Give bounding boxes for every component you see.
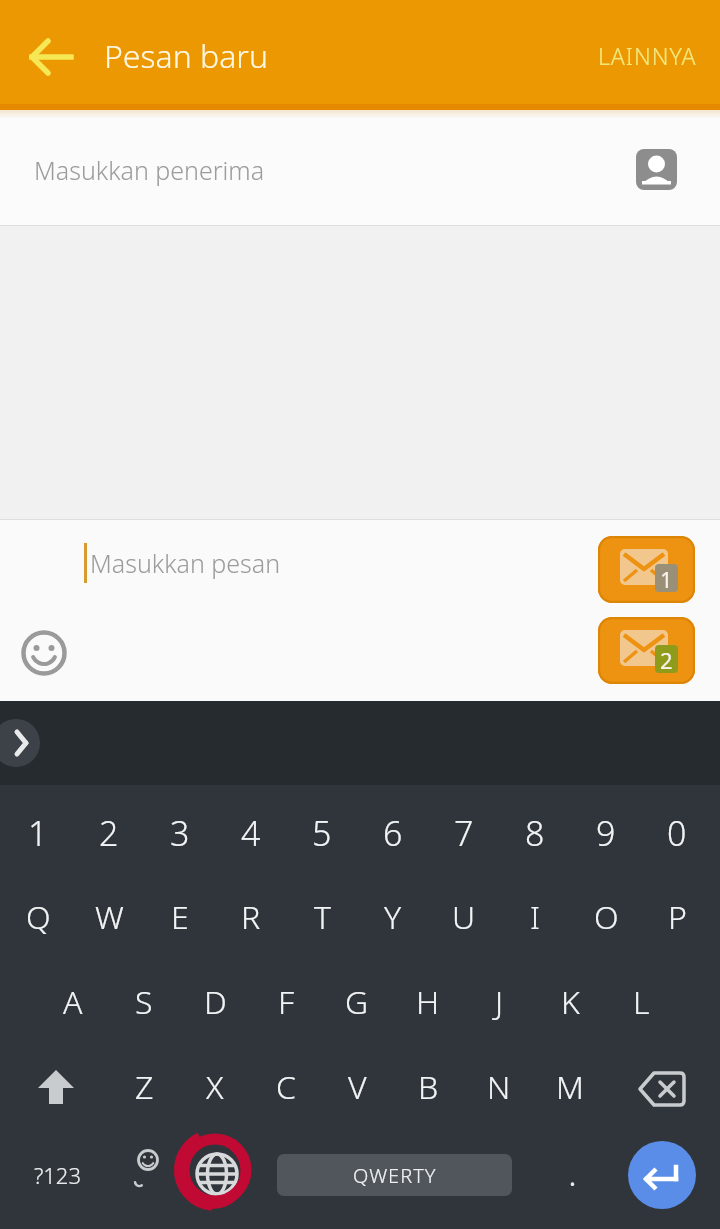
staticText: H <box>416 980 440 1024</box>
button[interactable] <box>636 149 677 190</box>
button[interactable]: R <box>216 879 286 955</box>
staticText: QWERTY <box>353 1162 437 1189</box>
staticText: O <box>594 895 619 939</box>
button[interactable]: N <box>464 1049 534 1125</box>
button[interactable]: P <box>642 879 712 955</box>
staticText: B <box>418 1065 439 1109</box>
button[interactable] <box>24 34 78 80</box>
staticText: 3 <box>170 810 190 856</box>
button[interactable]: J <box>464 964 534 1040</box>
staticText: P <box>668 895 687 939</box>
button[interactable]: Masukkan penerima <box>34 130 594 210</box>
button[interactable]: 7 <box>429 795 499 871</box>
button[interactable]: O <box>571 879 641 955</box>
staticText: . <box>569 1158 576 1193</box>
staticText: Q <box>26 895 51 939</box>
button[interactable] <box>634 1068 690 1110</box>
button[interactable]: D <box>180 964 250 1040</box>
staticText: Masukkan pesan <box>90 546 281 580</box>
button[interactable]: Masukkan pesan <box>90 530 570 596</box>
staticText: A <box>63 980 83 1024</box>
staticText: V <box>348 1065 367 1109</box>
staticText: 7 <box>454 810 474 856</box>
staticText: 5 <box>312 810 332 856</box>
button[interactable]: 8 <box>500 795 570 871</box>
staticText: C <box>276 1065 296 1109</box>
button[interactable]: S <box>109 964 179 1040</box>
staticText: N <box>487 1065 511 1109</box>
staticText: 1 <box>28 810 48 856</box>
staticText: K <box>561 980 580 1024</box>
button[interactable]: H <box>393 964 463 1040</box>
staticText: 6 <box>383 810 403 856</box>
button[interactable]: 9 <box>571 795 641 871</box>
button[interactable]: L <box>606 964 676 1040</box>
button[interactable] <box>30 1065 82 1111</box>
staticText: X <box>206 1065 224 1109</box>
staticText: Masukkan penerima <box>34 153 265 187</box>
button[interactable]: ?123 <box>25 1152 89 1198</box>
button[interactable] <box>20 629 68 677</box>
staticText: J <box>495 980 504 1024</box>
staticText: E <box>171 895 189 939</box>
button[interactable]: U <box>429 879 499 955</box>
staticText: T <box>314 895 331 939</box>
button[interactable]: F <box>251 964 321 1040</box>
button[interactable]: K <box>535 964 605 1040</box>
button[interactable]: T <box>287 879 357 955</box>
button[interactable] <box>628 1141 696 1209</box>
button[interactable]: G <box>322 964 392 1040</box>
button[interactable]: Y <box>358 879 428 955</box>
button[interactable]: 0 <box>642 795 712 871</box>
staticText: Y <box>384 895 402 939</box>
staticText: ?123 <box>34 1160 81 1190</box>
button[interactable]: LAINNYA <box>547 24 697 86</box>
button[interactable]: QWERTY <box>277 1154 512 1196</box>
staticText: 4 <box>241 810 261 856</box>
button[interactable]: A <box>38 964 108 1040</box>
staticText: 1 <box>660 564 673 592</box>
staticText: I <box>530 895 540 939</box>
button[interactable]: 4 <box>216 795 286 871</box>
button[interactable]: I <box>500 879 570 955</box>
button[interactable]: X <box>180 1049 250 1125</box>
button[interactable]: W <box>74 879 144 955</box>
button[interactable]: . <box>550 1152 594 1198</box>
staticText: Pesan baru <box>104 34 268 78</box>
button[interactable] <box>0 719 40 767</box>
staticText: M <box>556 1065 584 1109</box>
button[interactable]: V <box>322 1049 392 1125</box>
staticText: F <box>278 980 295 1024</box>
button[interactable]: 3 <box>145 795 215 871</box>
button[interactable]: Z <box>109 1049 179 1125</box>
button[interactable] <box>122 1140 172 1200</box>
staticText: 2 <box>99 810 119 856</box>
button[interactable]: M <box>535 1049 605 1125</box>
button[interactable]: 6 <box>358 795 428 871</box>
button[interactable] <box>160 1115 272 1227</box>
button[interactable]: 1 <box>598 536 695 603</box>
button[interactable]: Q <box>3 879 73 955</box>
staticText: 9 <box>596 810 616 856</box>
staticText: R <box>241 895 261 939</box>
button[interactable]: 1 <box>3 795 73 871</box>
staticText: U <box>452 895 476 939</box>
staticText: W <box>95 895 124 939</box>
staticText: S <box>135 980 153 1024</box>
button[interactable]: B <box>393 1049 463 1125</box>
button[interactable]: 2 <box>74 795 144 871</box>
button[interactable]: E <box>145 879 215 955</box>
button[interactable]: C <box>251 1049 321 1125</box>
staticText: LAINNYA <box>598 40 697 71</box>
staticText: Z <box>135 1065 154 1109</box>
button[interactable]: 5 <box>287 795 357 871</box>
staticText: 2 <box>660 645 673 673</box>
staticText: G <box>345 980 369 1024</box>
staticText: L <box>633 980 650 1024</box>
button[interactable]: 2 <box>598 617 695 684</box>
staticText: D <box>204 980 227 1024</box>
staticText: 8 <box>525 810 545 856</box>
staticText: 0 <box>667 810 687 856</box>
